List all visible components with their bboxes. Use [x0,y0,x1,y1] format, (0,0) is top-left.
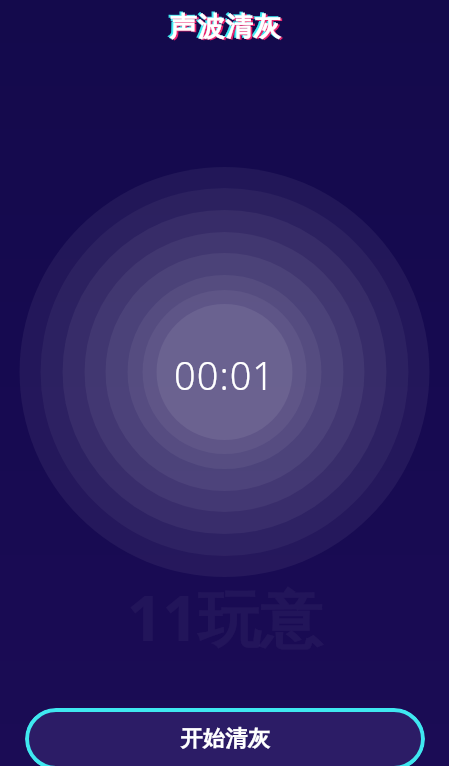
staticText: 11玩意 X.COM [140,726,309,752]
staticText: 00:01 [174,349,276,401]
staticText: 声波清灰 [169,10,281,44]
staticText: 声波清灰 [171,11,283,45]
button[interactable]: 开始清灰 [25,708,425,766]
staticText: 开始清灰 [180,725,270,753]
staticText: 11玩意 [127,575,322,660]
staticText: 声波清灰 [167,9,279,43]
